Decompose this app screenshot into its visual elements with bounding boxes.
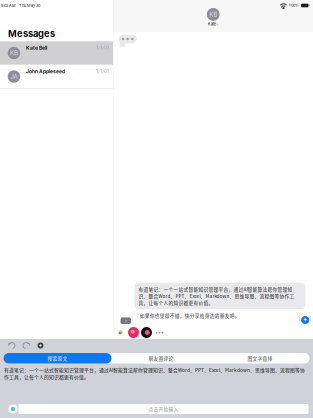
- staticText: Kate Bell: [26, 45, 47, 51]
- button[interactable]: Clipboard: [36, 341, 45, 349]
- staticText: Kate: [208, 21, 216, 27]
- button[interactable]: JA: [0, 65, 113, 88]
- staticText: KB: [209, 11, 217, 18]
- staticText: 100%: [289, 3, 299, 8]
- staticText: 9:03 AM: [1, 3, 16, 8]
- staticText: 1/1/01: [96, 69, 109, 74]
- button[interactable]: 朋友圈评论: [111, 353, 210, 363]
- button[interactable]: 搜索原文: [3, 353, 111, 363]
- staticText: 搜索原文: [47, 355, 67, 362]
- button[interactable]: Keyboard options: [7, 404, 18, 414]
- staticText: Messages: [8, 28, 55, 39]
- staticText: JA: [10, 73, 17, 80]
- button[interactable]: Redo: [22, 341, 31, 349]
- button[interactable]: KB: [0, 41, 113, 65]
- button[interactable]: 图文字直排: [210, 353, 309, 363]
- staticText: ›: [125, 317, 127, 324]
- staticText: John Appleseed: [26, 68, 65, 74]
- button[interactable]: Send: [301, 316, 309, 324]
- button[interactable]: KB: [113, 0, 313, 31]
- button[interactable]: Photos: [128, 327, 139, 338]
- button[interactable]: 点击开始输入: [18, 404, 308, 414]
- staticText: 点击开始输入: [148, 405, 178, 412]
- button[interactable]: Expand: [121, 314, 131, 321]
- button[interactable]: App Store: [115, 327, 126, 338]
- staticText: KB: [10, 49, 18, 57]
- staticText: Thu May 30: [19, 3, 40, 8]
- staticText: ›: [217, 21, 219, 27]
- staticText: 图文字直排: [247, 355, 272, 362]
- button[interactable]: Undo: [8, 341, 17, 349]
- staticText: 有道笔记：一个一站式智能知识管理平台，通过AI智能算法帮你管理知识、整合Word…: [138, 286, 294, 306]
- staticText: 有道笔记：一个一站式智能知识管理平台，通过AI智能算法帮你管理知识、整合Word…: [4, 366, 305, 380]
- staticText: 如果你也觉得不错，快分享给身边的朋友吧。: [140, 312, 240, 319]
- button[interactable]: More apps: [154, 327, 165, 338]
- staticText: 朋友圈评论: [148, 355, 173, 362]
- button[interactable]: Music: [141, 327, 152, 338]
- staticText: •••: [155, 329, 164, 336]
- staticText: 1/1/01: [96, 45, 109, 51]
